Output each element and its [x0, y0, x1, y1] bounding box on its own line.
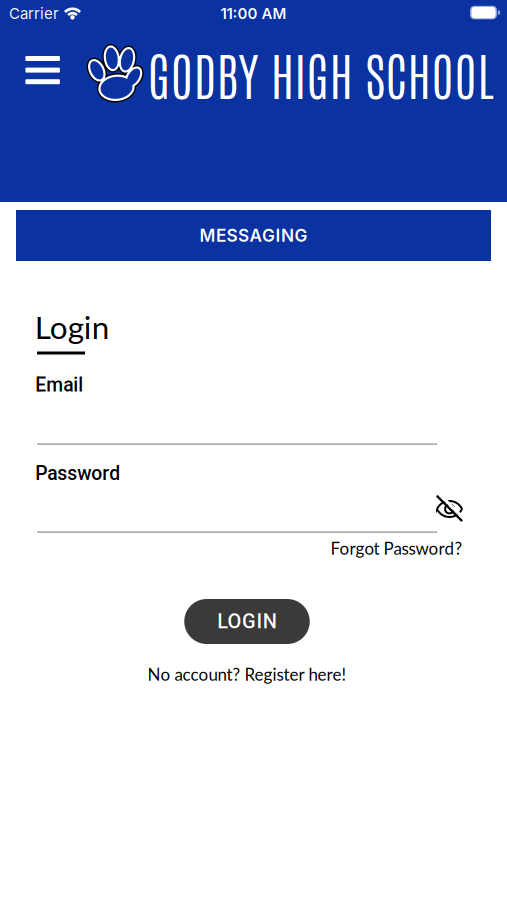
button[interactable]: LOGIN — [184, 599, 310, 644]
button[interactable]: Forgot Password? — [330, 538, 462, 558]
staticText: 11:00 AM — [220, 4, 286, 23]
staticText: No account? Register here! — [147, 664, 346, 684]
staticText: Password — [35, 462, 120, 485]
staticText: MESSAGING — [199, 225, 307, 246]
staticText: LOGIN — [217, 610, 277, 633]
button[interactable]: Show password — [432, 492, 507, 900]
button[interactable]: No account? Register here! — [147, 664, 346, 684]
staticText: Login — [35, 308, 110, 346]
staticText: Email — [35, 373, 83, 396]
staticText: GODBY HIGH SCHOOL — [147, 40, 493, 106]
button[interactable]: MESSAGING — [16, 210, 491, 261]
staticText: Carrier — [9, 4, 59, 23]
button[interactable]: Menu — [25, 56, 60, 84]
staticText: Forgot Password? — [330, 538, 462, 558]
